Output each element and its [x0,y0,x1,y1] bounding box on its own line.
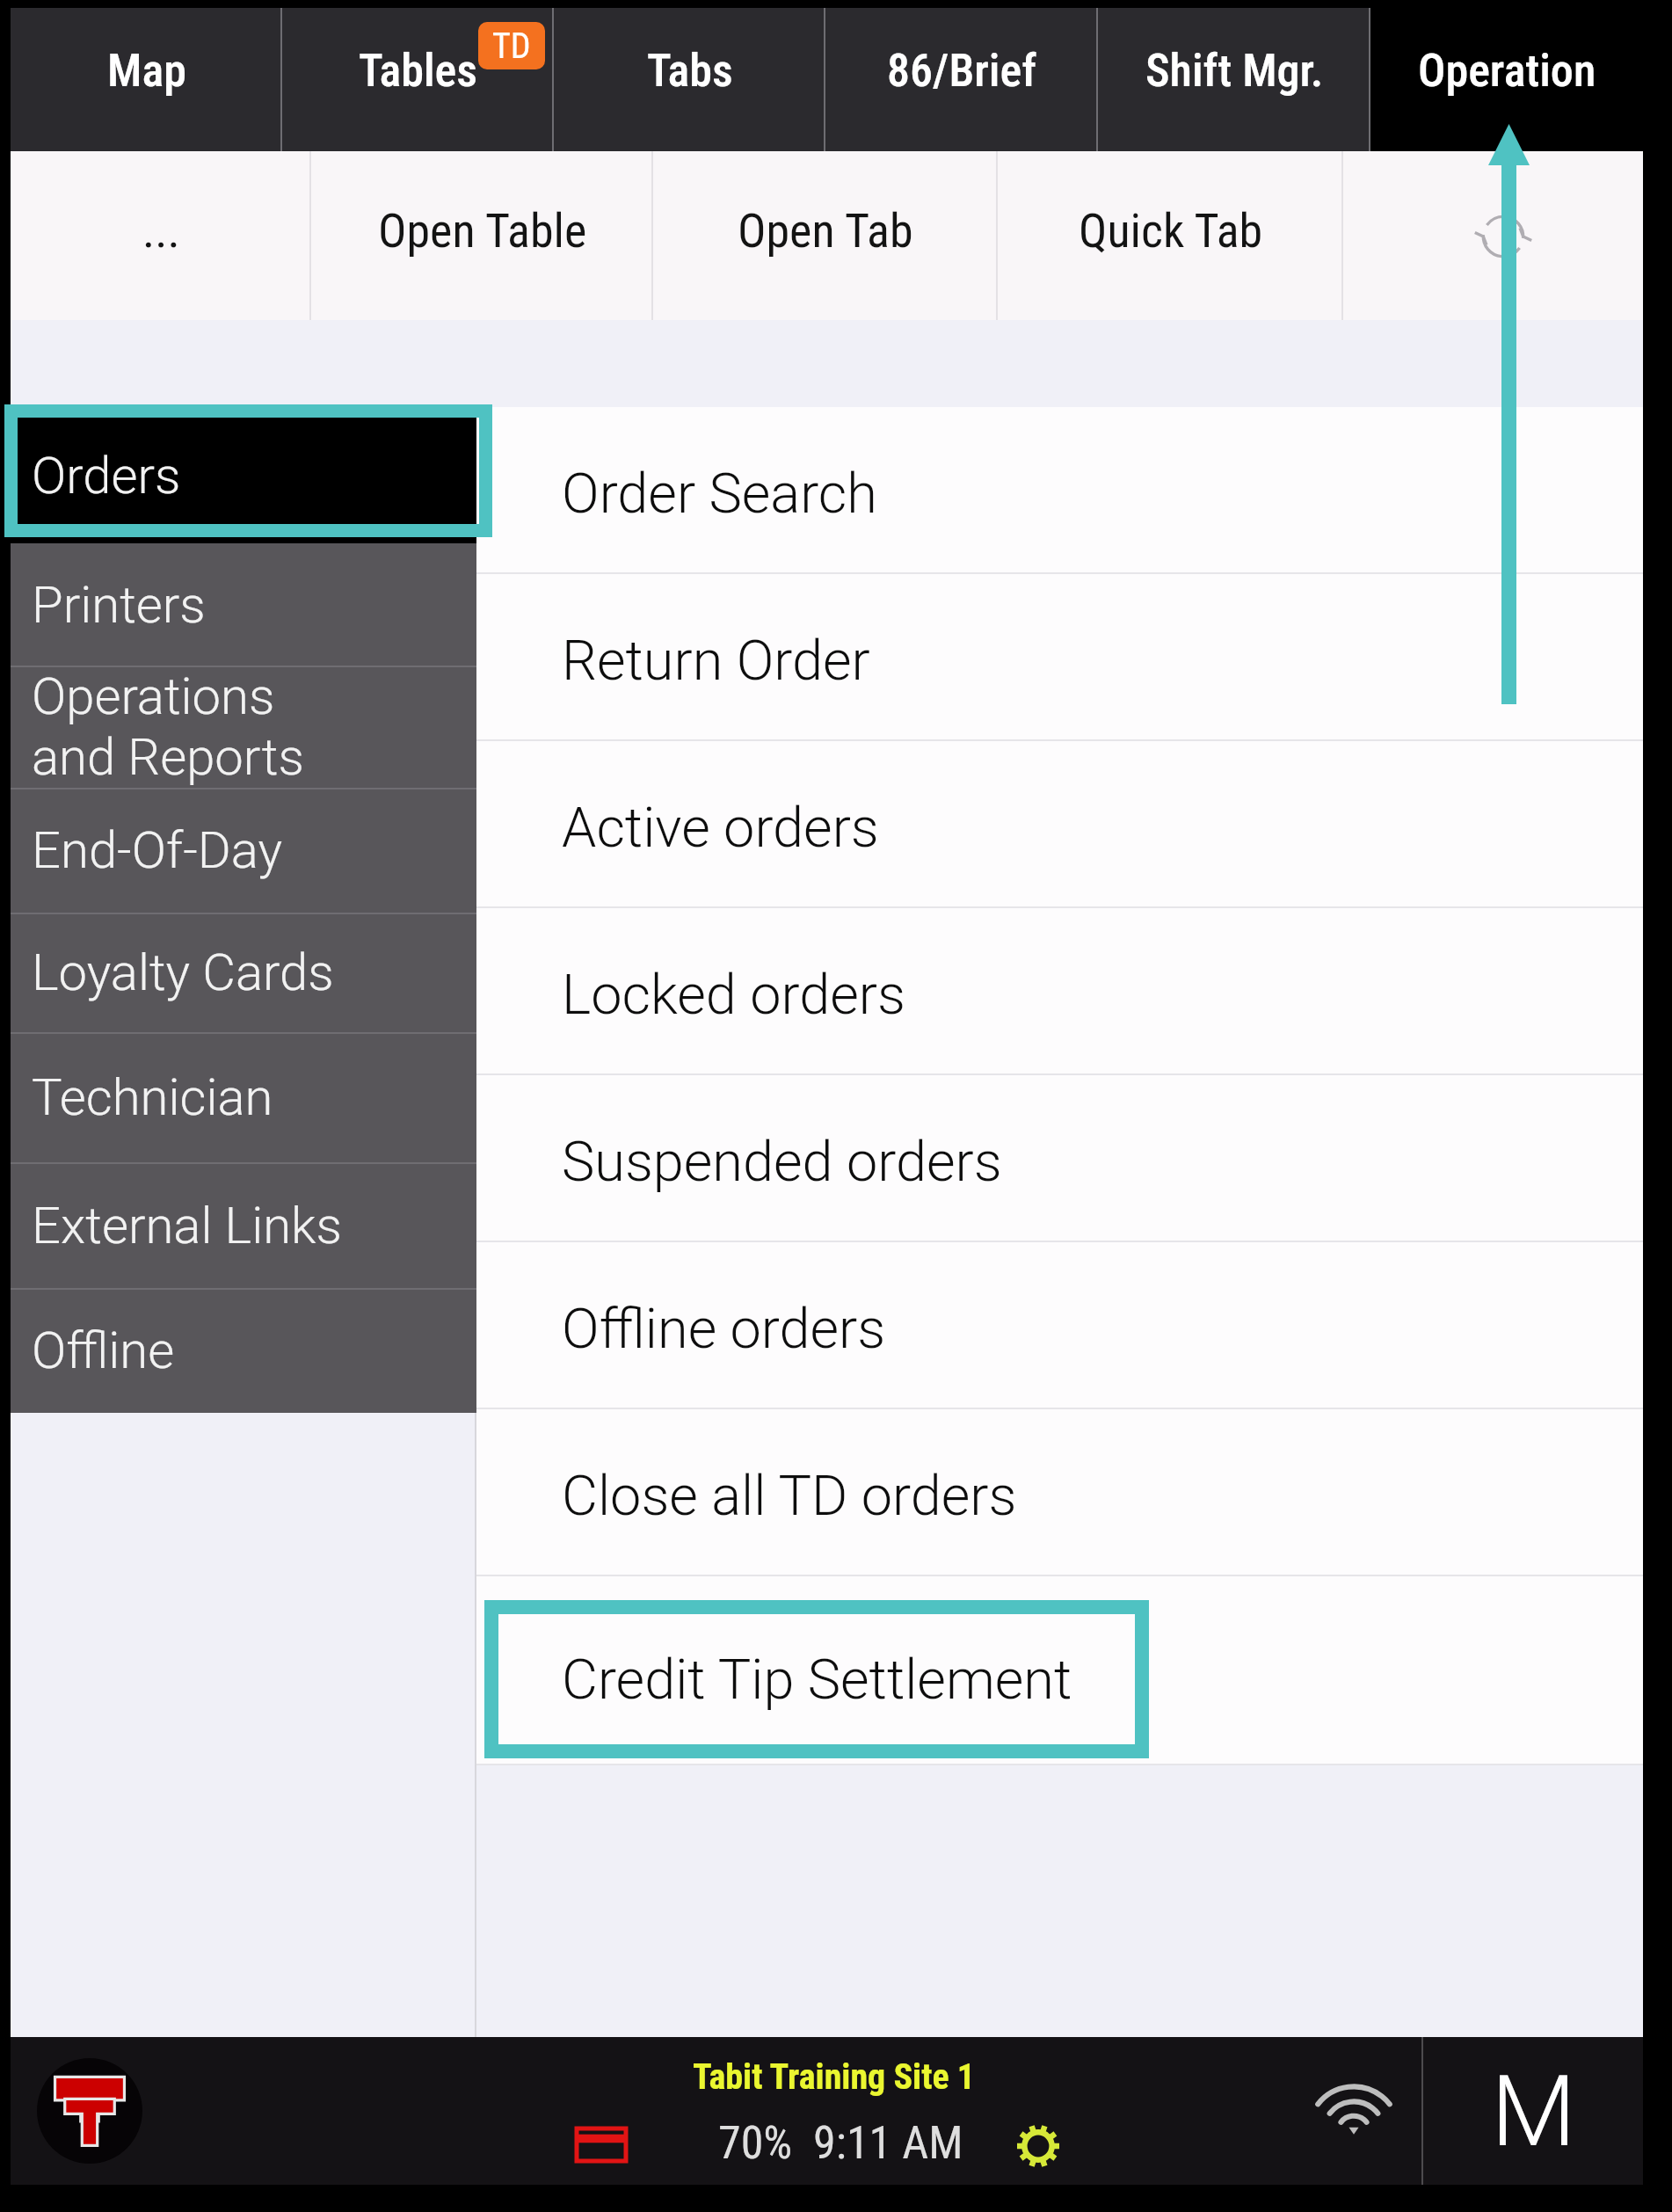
staticText: Active orders [562,796,879,861]
button[interactable]: Credit Tip Settlement [476,1576,1643,1765]
staticText: Suspended orders [562,1130,1002,1195]
staticText: 86/Brief [887,44,1037,98]
staticText: Shift Mgr. [1145,44,1324,98]
staticText: External Links [32,1196,342,1255]
staticText: 70% 9:11 AM [718,2116,963,2170]
button[interactable]: Quick Tab [998,151,1343,320]
button[interactable]: Printers [11,543,476,666]
button[interactable]: Tabs [554,8,825,151]
button[interactable]: Operations and Reports [11,666,476,788]
button[interactable]: ... [11,151,311,320]
staticText: Technician [32,1067,273,1127]
button[interactable]: Return Order [476,574,1643,741]
button[interactable]: Locked orders [476,908,1643,1075]
staticText: Return Order [562,629,870,694]
button[interactable]: Close all TD orders [476,1409,1643,1576]
button[interactable]: Settings [1016,2124,1060,2168]
button[interactable]: Refresh [1343,151,1643,320]
button[interactable]: Operation [1370,8,1643,151]
staticText: Open Table [378,203,587,258]
staticText: Operations and Reports [32,666,304,788]
staticText: Tables [359,44,478,98]
button[interactable]: Order Search [476,407,1643,574]
button[interactable]: Wi-Fi [1276,2079,1431,2146]
staticText: Operation [1418,44,1596,98]
staticText: TD [492,25,531,67]
button[interactable]: End-Of-Day [11,788,476,913]
button[interactable]: Home [37,2058,142,2164]
staticText: Printers [32,575,206,635]
staticText: Order Search [562,462,877,527]
button[interactable]: Tables [282,8,554,151]
button[interactable]: 86/Brief [825,8,1098,151]
staticText: Quick Tab [1079,203,1263,258]
staticText: End-Of-Day [32,820,283,880]
staticText: Loyalty Cards [32,942,334,1002]
staticText: Offline [32,1321,175,1380]
button[interactable]: Active orders [476,741,1643,908]
button[interactable]: Suspended orders [476,1075,1643,1242]
button[interactable]: Loyalty Cards [11,913,476,1032]
staticText: Offline orders [562,1297,886,1362]
staticText: Orders [32,446,181,506]
button[interactable]: Open Table [311,151,653,320]
staticText: M [1491,2054,1576,2169]
staticText: Credit Tip Settlement [562,1648,1072,1713]
staticText: Tabit Training Site 1 [693,2056,976,2098]
button[interactable]: Offline orders [476,1242,1643,1409]
staticText: ... [142,203,180,258]
button[interactable]: Technician [11,1032,476,1162]
button[interactable]: Map [11,8,282,151]
button[interactable]: Open Tab [653,151,998,320]
button[interactable]: Orders [11,407,476,543]
button[interactable]: Shift Mgr. [1098,8,1370,151]
button[interactable]: Offline [11,1288,476,1413]
staticText: Tabs [647,44,733,98]
staticText: Locked orders [562,963,905,1028]
button[interactable]: M [1423,2037,1643,2185]
staticText: Map [107,44,186,98]
staticText: Close all TD orders [562,1464,1017,1529]
staticText: Open Tab [738,203,913,258]
button[interactable]: External Links [11,1162,476,1288]
